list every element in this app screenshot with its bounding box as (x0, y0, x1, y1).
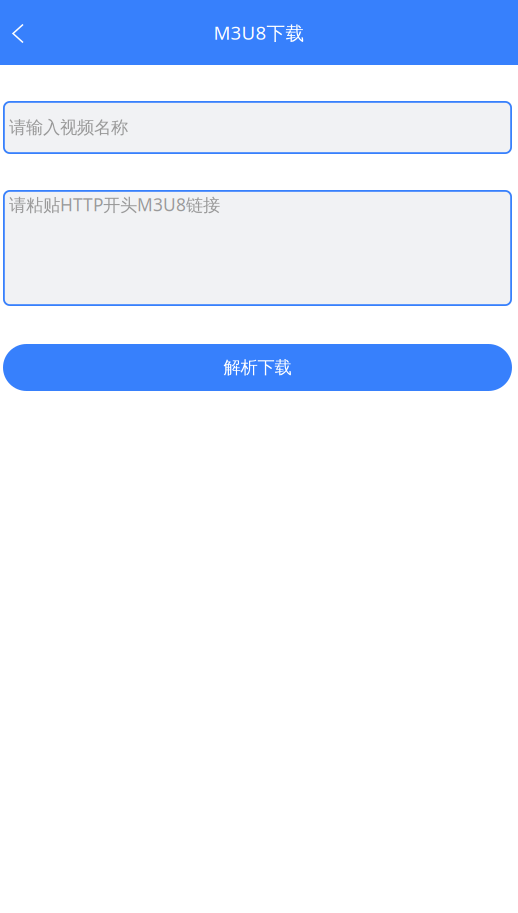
staticText: M3U8下载 (213, 20, 304, 45)
button[interactable]: 解析下载 (3, 344, 512, 391)
staticText: 解析下载 (223, 357, 291, 378)
staticText: 请输入视频名称 (9, 117, 128, 138)
button[interactable]: 请粘贴HTTP开头M3U8链接 (3, 190, 512, 306)
button[interactable]: 请输入视频名称 (3, 101, 512, 154)
button[interactable]: Back (0, 10, 37, 54)
staticText: 请粘贴HTTP开头M3U8链接 (9, 193, 220, 216)
